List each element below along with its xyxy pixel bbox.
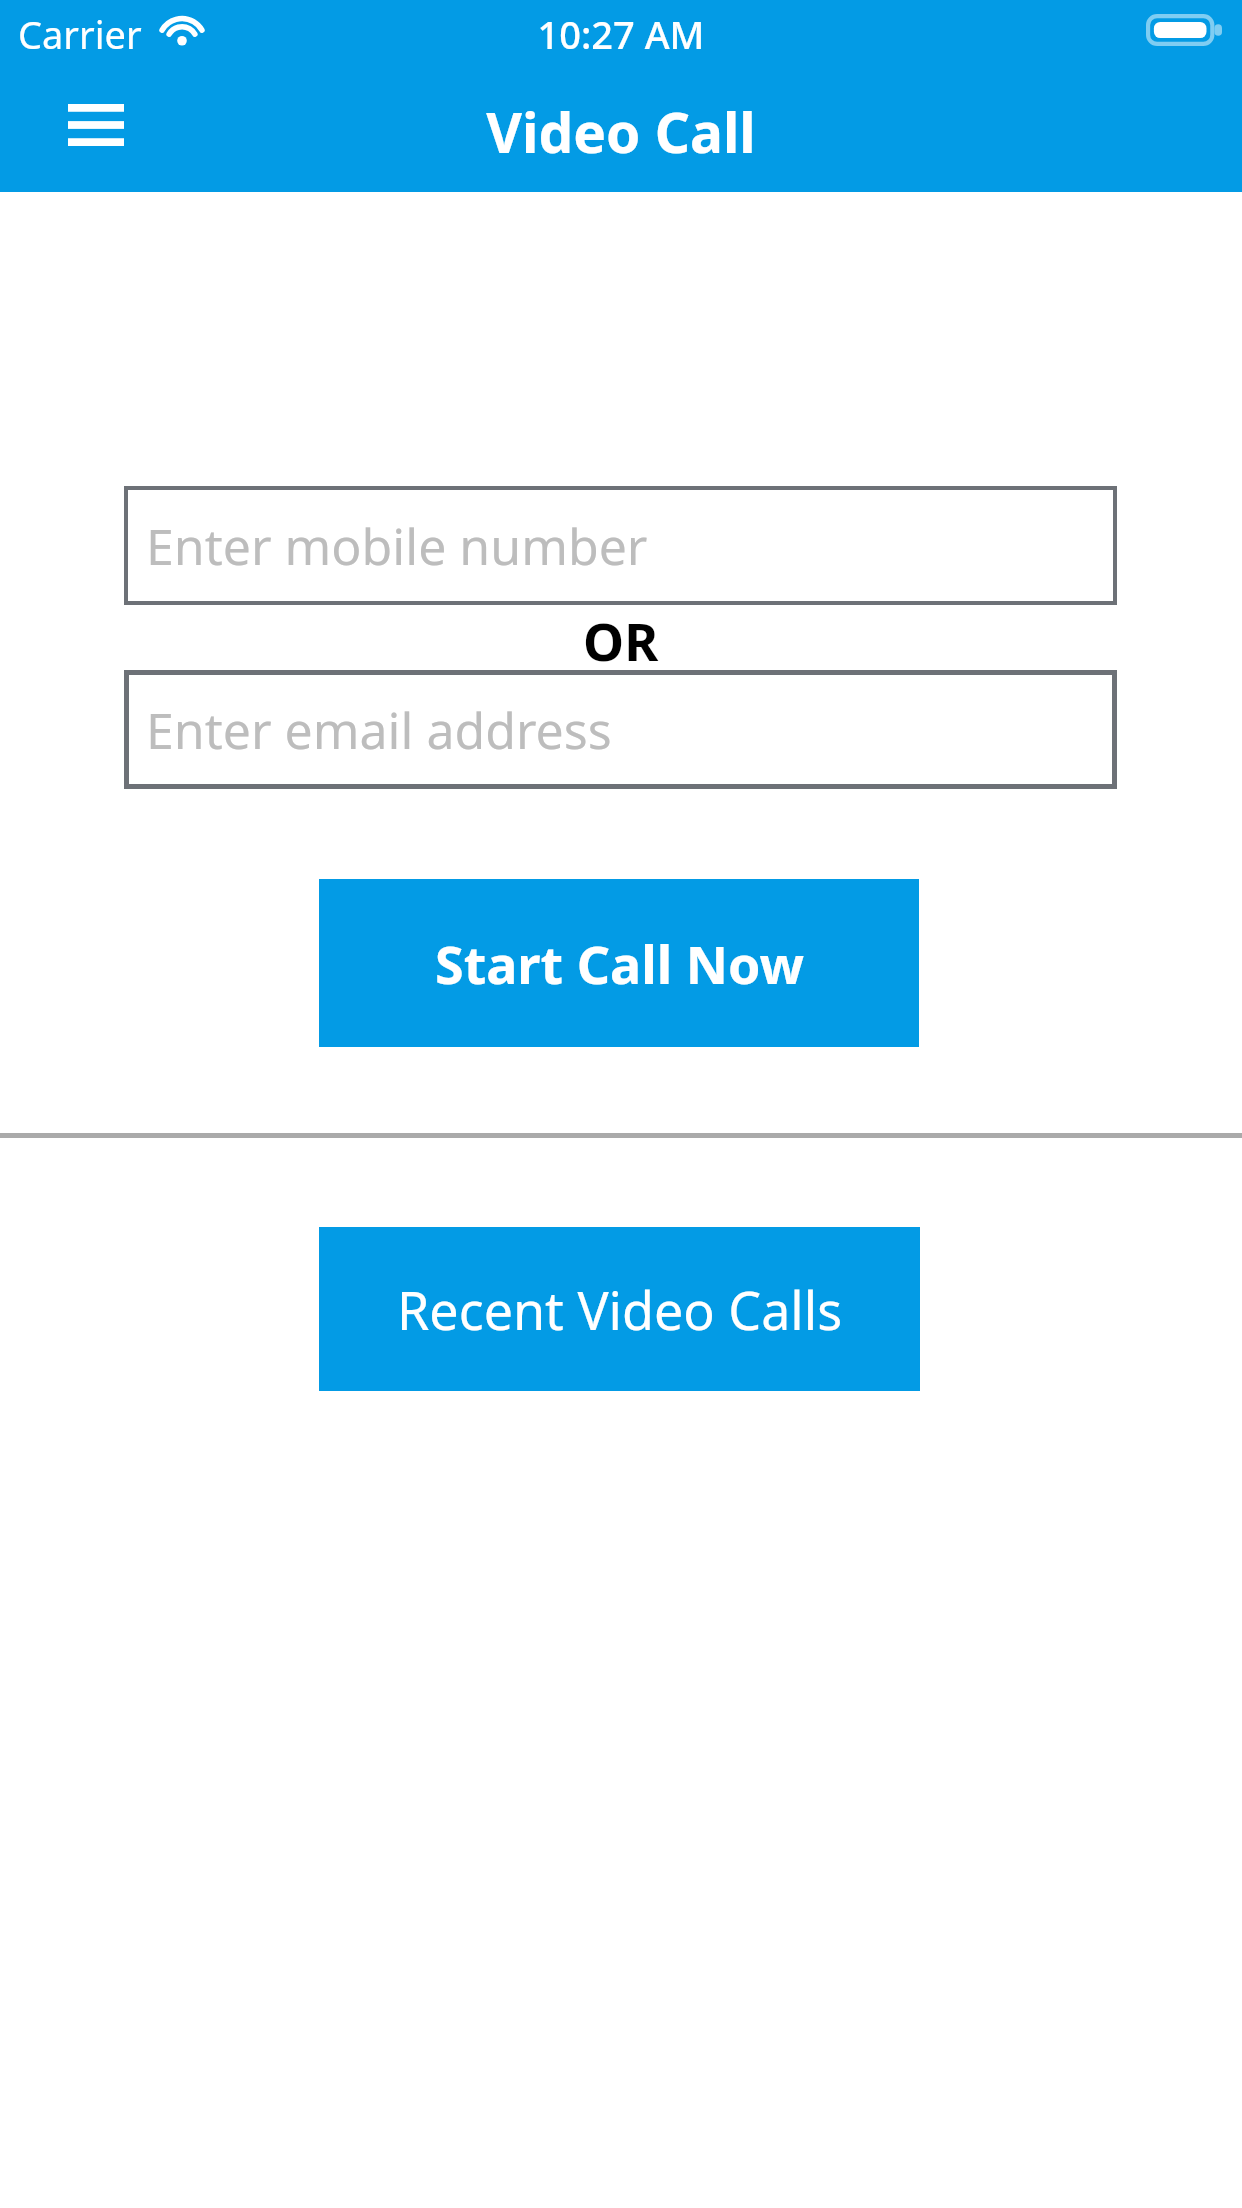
staticText: Start Call Now (435, 928, 804, 999)
button[interactable]: Recent Video Calls (319, 1227, 920, 1391)
staticText: Recent Video Calls (397, 1274, 843, 1345)
staticText: Carrier (18, 8, 142, 60)
staticText: Enter email address (146, 696, 612, 764)
staticText: 10:27 AM (0, 8, 1242, 60)
button[interactable]: Enter email address (124, 670, 1117, 789)
button[interactable]: Start Call Now (319, 879, 919, 1047)
staticText: OR (583, 605, 659, 670)
button[interactable]: Menu (44, 82, 148, 168)
button[interactable]: Enter mobile number (124, 486, 1117, 605)
staticText: Video Call (0, 94, 1242, 169)
staticText: Enter mobile number (146, 512, 648, 580)
